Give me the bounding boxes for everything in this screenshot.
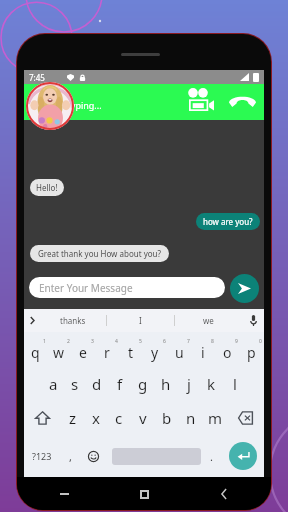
button[interactable]: j	[177, 367, 200, 401]
staticText: ?123	[32, 450, 52, 462]
staticText: I	[139, 315, 142, 326]
button[interactable]: Emoji	[82, 435, 105, 477]
button[interactable]: Voice call	[229, 95, 256, 107]
staticText: e	[79, 343, 87, 362]
button[interactable]: f	[108, 367, 131, 401]
button[interactable]: Enter	[229, 442, 257, 470]
button[interactable]: Contact photo	[26, 82, 74, 130]
button[interactable]: l	[223, 367, 246, 401]
button[interactable]: we	[175, 309, 242, 332]
staticText: p	[247, 343, 256, 362]
button[interactable]: s	[64, 367, 86, 401]
staticText: x	[92, 408, 100, 428]
staticText: .	[210, 449, 213, 464]
button[interactable]: 8	[192, 332, 216, 367]
button[interactable]: d	[86, 367, 108, 401]
staticText: t	[128, 343, 134, 362]
staticText: y	[151, 343, 159, 362]
staticText: 4	[115, 338, 118, 345]
button[interactable]: Voice input	[242, 309, 264, 332]
button[interactable]: m	[203, 401, 227, 435]
button[interactable]: v	[131, 401, 155, 435]
button[interactable]: Shift	[24, 401, 61, 435]
staticText: 3	[91, 338, 94, 345]
staticText: Hello!	[36, 182, 58, 193]
button[interactable]: .	[201, 435, 221, 477]
button[interactable]: Hello!	[30, 179, 64, 196]
button[interactable]: h	[154, 367, 177, 401]
staticText: j	[187, 374, 191, 394]
staticText: ,	[69, 449, 72, 464]
button[interactable]: z	[61, 401, 84, 435]
button[interactable]: c	[107, 401, 131, 435]
staticText: 7	[187, 338, 190, 345]
button[interactable]: how are you?	[196, 213, 260, 230]
button[interactable]: thanks	[40, 309, 106, 332]
button[interactable]: k	[200, 367, 223, 401]
staticText: 5	[139, 338, 142, 345]
staticText: thanks	[60, 315, 86, 326]
staticText: m	[208, 408, 223, 428]
staticText: Great thank you How about you?	[38, 248, 161, 259]
staticText: Typing...	[66, 99, 102, 111]
button[interactable]: 9	[216, 332, 240, 367]
staticText: k	[207, 374, 216, 394]
staticText: z	[69, 408, 77, 428]
button[interactable]: 4	[96, 332, 120, 367]
staticText: 6	[163, 338, 166, 345]
staticText: Enter Your Message	[39, 281, 133, 295]
button[interactable]: Great thank you How about you?	[30, 245, 169, 262]
button[interactable]: Video call	[189, 88, 214, 111]
staticText: 8	[211, 338, 214, 345]
button[interactable]: ,	[59, 435, 82, 477]
button[interactable]: 5	[120, 332, 144, 367]
button[interactable]: 2	[48, 332, 72, 367]
button[interactable]: Backspace	[227, 401, 264, 435]
staticText: u	[175, 343, 184, 362]
button[interactable]: Home	[132, 482, 156, 506]
button[interactable]: a	[42, 367, 64, 401]
staticText: n	[186, 408, 196, 428]
staticText: 7:45	[29, 72, 45, 83]
staticText: 2	[67, 338, 70, 345]
button[interactable]: 7	[168, 332, 192, 367]
staticText: a	[49, 374, 58, 394]
staticText: o	[223, 343, 232, 362]
staticText: 1	[43, 338, 46, 345]
button[interactable]: Recents	[52, 482, 76, 506]
button[interactable]: n	[179, 401, 203, 435]
staticText: i	[201, 343, 205, 362]
button[interactable]: I	[107, 309, 174, 332]
button[interactable]: ?123	[24, 435, 59, 477]
staticText: s	[71, 374, 79, 394]
button[interactable]: 0	[240, 332, 264, 367]
staticText: w	[53, 343, 65, 362]
button[interactable]: Send message	[230, 274, 259, 303]
button[interactable]: b	[155, 401, 179, 435]
staticText: f	[117, 374, 123, 394]
button[interactable]: Enter Your Message	[29, 277, 225, 298]
staticText: l	[233, 374, 237, 394]
staticText: 9	[235, 338, 238, 345]
staticText: q	[31, 343, 40, 362]
button[interactable]: x	[84, 401, 107, 435]
staticText: c	[115, 408, 123, 428]
staticText: h	[161, 374, 171, 394]
staticText: we	[203, 315, 214, 326]
button[interactable]: 1	[24, 332, 48, 367]
button[interactable]: g	[131, 367, 154, 401]
staticText: b	[162, 408, 172, 428]
staticText: g	[138, 374, 148, 394]
staticText: d	[92, 374, 102, 394]
staticText: r	[104, 343, 110, 362]
staticText: 0	[259, 338, 262, 345]
staticText: v	[139, 408, 147, 428]
button[interactable]: More suggestions	[24, 309, 40, 332]
button[interactable]: 3	[72, 332, 96, 367]
button[interactable]: 6	[144, 332, 168, 367]
button[interactable]: Back	[212, 482, 236, 506]
staticText: how are you?	[203, 216, 253, 227]
